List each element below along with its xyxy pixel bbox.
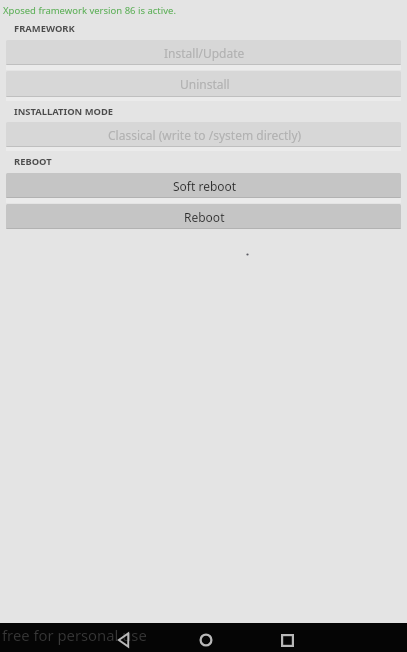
staticText: Soft reboot: [173, 178, 237, 194]
button[interactable]: Classical (write to /system directly): [6, 122, 401, 147]
staticText: REBOOT: [14, 155, 52, 168]
staticText: Uninstall: [180, 76, 230, 92]
button[interactable]: Recent apps: [275, 626, 299, 652]
staticText: free for personal use: [2, 625, 147, 645]
button[interactable]: Reboot: [6, 204, 401, 229]
staticText: INSTALLATION MODE: [14, 105, 114, 118]
staticText: Xposed framework version 86 is active.: [3, 4, 176, 17]
button[interactable]: Install/Update: [6, 40, 401, 65]
staticText: Install/Update: [164, 45, 245, 61]
staticText: Reboot: [184, 209, 225, 225]
staticText: FRAMEWORK: [14, 22, 75, 35]
button[interactable]: Soft reboot: [6, 173, 401, 198]
button[interactable]: Back: [111, 625, 135, 652]
button[interactable]: Uninstall: [6, 71, 401, 97]
button[interactable]: Home: [194, 625, 218, 652]
staticText: Classical (write to /system directly): [108, 127, 302, 143]
